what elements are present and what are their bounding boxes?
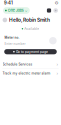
button[interactable]: Schedule Services [0, 60, 61, 69]
staticText: ⏻ [55, 1, 58, 5]
staticText: Track my electric meter alarm [3, 71, 51, 75]
button[interactable]: Track my electric meter alarm [0, 69, 61, 78]
staticText: ⌄ [25, 8, 28, 13]
staticText: › [56, 71, 58, 76]
staticText: Go to payment page [16, 50, 48, 54]
staticText: 9:41 [4, 0, 13, 6]
staticText: Available [24, 27, 39, 31]
button[interactable]: One Jobs [3, 7, 30, 14]
staticText: › [56, 62, 58, 67]
button[interactable]: Notifications [46, 8, 52, 13]
staticText: Meter no. [4, 36, 19, 39]
button[interactable]: Profile [52, 7, 58, 14]
staticText: One Jobs [8, 8, 24, 13]
staticText: Enter number [4, 42, 25, 46]
staticText: Hello, Robin Smith [9, 17, 50, 23]
button[interactable]: Go to payment page [4, 49, 57, 54]
staticText: Schedule Services [3, 62, 33, 66]
